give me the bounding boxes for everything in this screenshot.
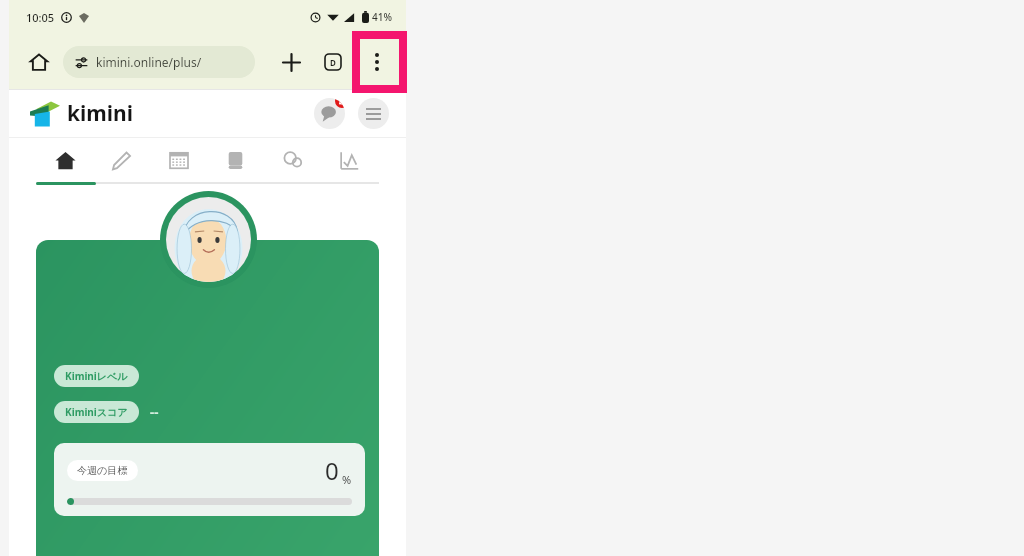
button[interactable]: More options — [360, 45, 394, 79]
button[interactable]: Progress — [321, 138, 378, 182]
button[interactable]: Messages — [314, 98, 345, 129]
staticText: 4 — [339, 98, 345, 107]
button[interactable]: Menu — [358, 98, 389, 129]
staticText: % — [342, 472, 352, 487]
staticText: 41% — [372, 10, 392, 24]
staticText: 今週の目標 — [77, 464, 128, 477]
staticText: Kiminiスコア — [65, 405, 128, 419]
button[interactable]: Materials — [207, 138, 264, 182]
button[interactable]: Lessons — [93, 138, 150, 182]
staticText: 10:05 — [26, 10, 55, 25]
button[interactable]: Home — [37, 138, 93, 182]
button[interactable]: Switch tabs — [316, 45, 350, 79]
button[interactable]: Home — [21, 44, 57, 80]
button[interactable]: New tab — [274, 45, 308, 79]
staticText: kimini — [67, 99, 133, 128]
staticText: D — [330, 57, 336, 68]
staticText: 0 — [325, 454, 339, 487]
staticText: -- — [150, 403, 159, 421]
button[interactable]: Calendar — [150, 138, 207, 182]
staticText: kimini.online/plus/ — [96, 54, 202, 70]
staticText: Kiminiレベル — [65, 369, 128, 383]
button[interactable]: Chat — [264, 138, 321, 182]
button[interactable]: kimini.online/plus/ — [63, 46, 255, 78]
